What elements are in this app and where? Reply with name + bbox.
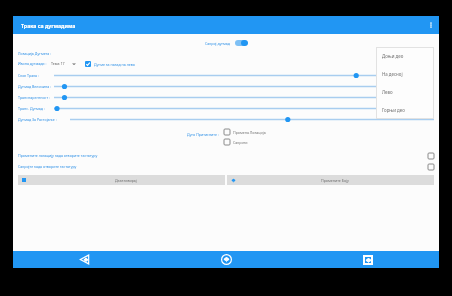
button[interactable]: [54, 81, 434, 92]
button[interactable]: Checkbox: [85, 61, 135, 67]
staticText: Дугме за назад на лево: [94, 62, 135, 67]
button[interactable]: [54, 92, 434, 103]
staticText: Тема 17: [51, 61, 65, 66]
staticText: Дуго Притисните :: [187, 132, 219, 137]
staticText: Дугмад За Растојање :: [18, 117, 57, 122]
staticText: Локација Дугмета :: [18, 51, 52, 56]
staticText: Сакриј дугмад: [205, 41, 231, 46]
staticText: Трака са дугмадима: [21, 22, 76, 29]
staticText: Деактивирај: [115, 178, 137, 183]
button[interactable]: Промените локацију када отворите тастату…: [18, 150, 434, 161]
staticText: Транс. Дугмад :: [18, 106, 45, 111]
button[interactable]: Checkbox: [428, 164, 434, 170]
button[interactable]: Checkbox: [428, 153, 434, 159]
button[interactable]: Сакријте када отворите тастатуру: [18, 161, 434, 172]
button[interactable]: Checkbox: [85, 61, 91, 67]
button[interactable]: Checkbox: [224, 139, 230, 145]
button[interactable]: Деактивирај: [18, 175, 225, 185]
button[interactable]: Доњи део: [376, 47, 434, 65]
button[interactable]: Checkbox: [224, 137, 248, 147]
button[interactable]: Checkbox: [224, 127, 266, 137]
button[interactable]: [70, 114, 434, 125]
staticText: Скок Трака :: [18, 73, 39, 78]
button[interactable]: Промените Боју: [227, 175, 434, 185]
staticText: Икона дугмади :: [18, 61, 47, 66]
staticText: Промените Боју: [321, 178, 349, 183]
button[interactable]: Сакриј дугмад: [205, 40, 248, 46]
staticText: Горњи део: [382, 107, 405, 113]
button[interactable]: Checkbox: [224, 129, 230, 135]
button[interactable]: На десној: [376, 65, 434, 83]
button[interactable]: [54, 103, 434, 114]
staticText: На десној: [382, 71, 403, 77]
button[interactable]: Back: [13, 251, 155, 268]
button[interactable]: More options: [423, 17, 439, 33]
button[interactable]: Recents: [297, 251, 439, 268]
button[interactable]: Горњи део: [376, 101, 434, 119]
staticText: Лево: [382, 89, 393, 95]
button[interactable]: Лево: [376, 83, 434, 101]
staticText: Транспарентност :: [18, 95, 50, 100]
staticText: Сакријте када отворите тастатуру: [18, 164, 77, 169]
button[interactable]: [54, 70, 434, 81]
button[interactable]: Тема 17: [51, 61, 76, 66]
staticText: Промените локацију када отворите тастату…: [18, 153, 98, 158]
staticText: Доњи део: [382, 53, 404, 59]
button[interactable]: Home: [155, 251, 297, 268]
staticText: Сакрити: [233, 140, 248, 145]
staticText: Дугмад Величина :: [18, 84, 52, 89]
staticText: Промена Локација: [233, 130, 266, 135]
